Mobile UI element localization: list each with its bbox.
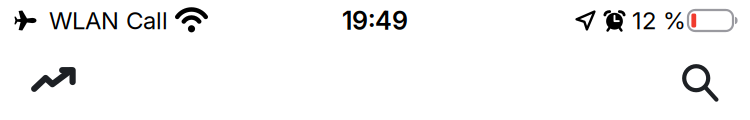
- button[interactable]: Search: [672, 41, 728, 105]
- staticText: 12 %: [632, 6, 686, 35]
- staticText: WLAN Call: [49, 6, 168, 35]
- button[interactable]: Trending: [19, 47, 88, 99]
- staticText: 19:49: [342, 5, 408, 36]
